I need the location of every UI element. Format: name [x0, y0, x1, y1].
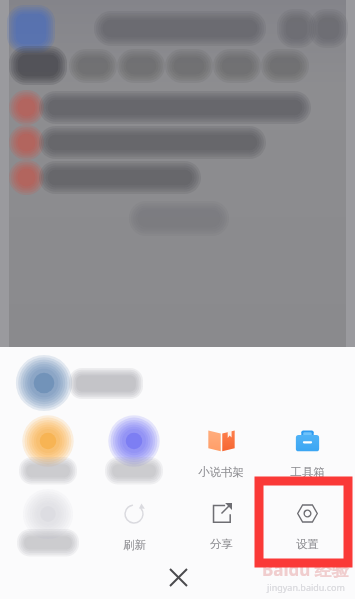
button[interactable]: 小说书架	[180, 419, 262, 483]
staticText: Baidu 经验	[262, 558, 349, 581]
button[interactable]: Menu item	[7, 493, 89, 554]
button[interactable]: Menu item	[7, 419, 89, 482]
button[interactable]: 工具箱	[266, 419, 348, 483]
staticText: 小说书架	[198, 465, 244, 479]
button[interactable]: Menu item	[93, 419, 175, 482]
staticText: jingyan.baidu.com	[267, 581, 345, 593]
button[interactable]: Close	[159, 558, 197, 596]
button[interactable]: 分享	[180, 493, 262, 555]
staticText: 分享	[210, 537, 233, 551]
staticText: 设置	[296, 537, 319, 551]
button[interactable]: 刷新	[93, 493, 175, 556]
button[interactable]: Account	[0, 359, 355, 407]
staticText: 工具箱	[290, 465, 325, 479]
staticText: 刷新	[123, 538, 146, 552]
button[interactable]: 设置	[266, 493, 348, 555]
